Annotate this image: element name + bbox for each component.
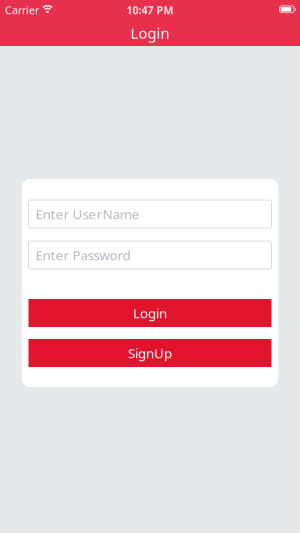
staticText: Login bbox=[133, 304, 167, 322]
button[interactable]: Enter Password bbox=[28, 241, 271, 269]
staticText: SignUp bbox=[128, 344, 172, 362]
button[interactable]: Login bbox=[28, 299, 271, 327]
staticText: Login bbox=[130, 23, 169, 43]
staticText: Enter UserName bbox=[35, 205, 139, 223]
staticText: Enter Password bbox=[35, 246, 130, 264]
staticText: 10:47 PM bbox=[126, 3, 173, 17]
staticText: Carrier bbox=[5, 3, 39, 17]
button[interactable]: Enter UserName bbox=[28, 200, 271, 228]
button[interactable]: SignUp bbox=[28, 339, 271, 367]
